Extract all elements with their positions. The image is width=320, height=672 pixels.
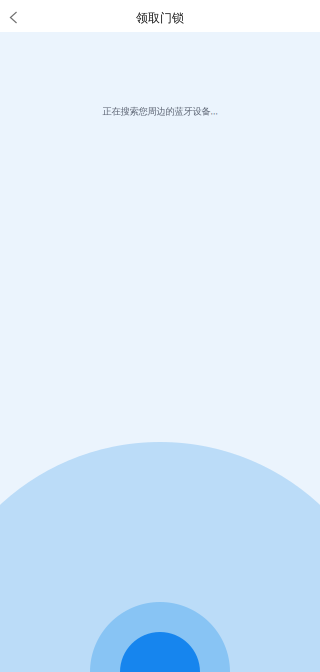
- staticText: 正在搜索您周边的蓝牙设备…: [102, 105, 217, 117]
- button[interactable]: Back: [0, 1, 27, 33]
- staticText: 领取门锁: [136, 10, 184, 25]
